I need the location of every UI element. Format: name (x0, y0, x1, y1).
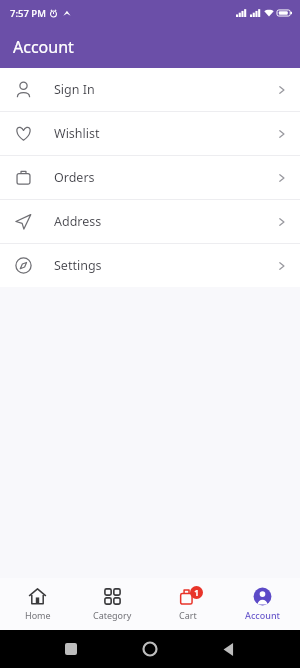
button[interactable]: Orders (0, 156, 300, 199)
button[interactable]: Address (0, 200, 300, 243)
button[interactable]: Settings (0, 244, 300, 287)
staticText: Settings (54, 257, 102, 274)
staticText: Account (13, 36, 74, 58)
staticText: Category (93, 609, 132, 621)
button[interactable]: Wishlist (0, 112, 300, 155)
other: Recents (65, 643, 77, 655)
staticText: Home (25, 609, 51, 621)
staticText: 1 (194, 587, 199, 598)
staticText: Wishlist (54, 125, 100, 142)
staticText: Orders (54, 169, 95, 186)
staticText: Cart (179, 609, 197, 621)
staticText: 7:57 PM (10, 7, 46, 20)
button[interactable]: Category (75, 578, 150, 630)
other: Home (142, 641, 158, 657)
staticText: Sign In (54, 81, 95, 98)
staticText: Account (245, 609, 280, 621)
button[interactable]: Home (0, 578, 75, 630)
other: Back (222, 643, 235, 656)
button[interactable]: Sign In (0, 68, 300, 111)
staticText: Address (54, 213, 102, 230)
button[interactable]: 1 (150, 578, 225, 630)
button[interactable]: Account (225, 578, 300, 630)
